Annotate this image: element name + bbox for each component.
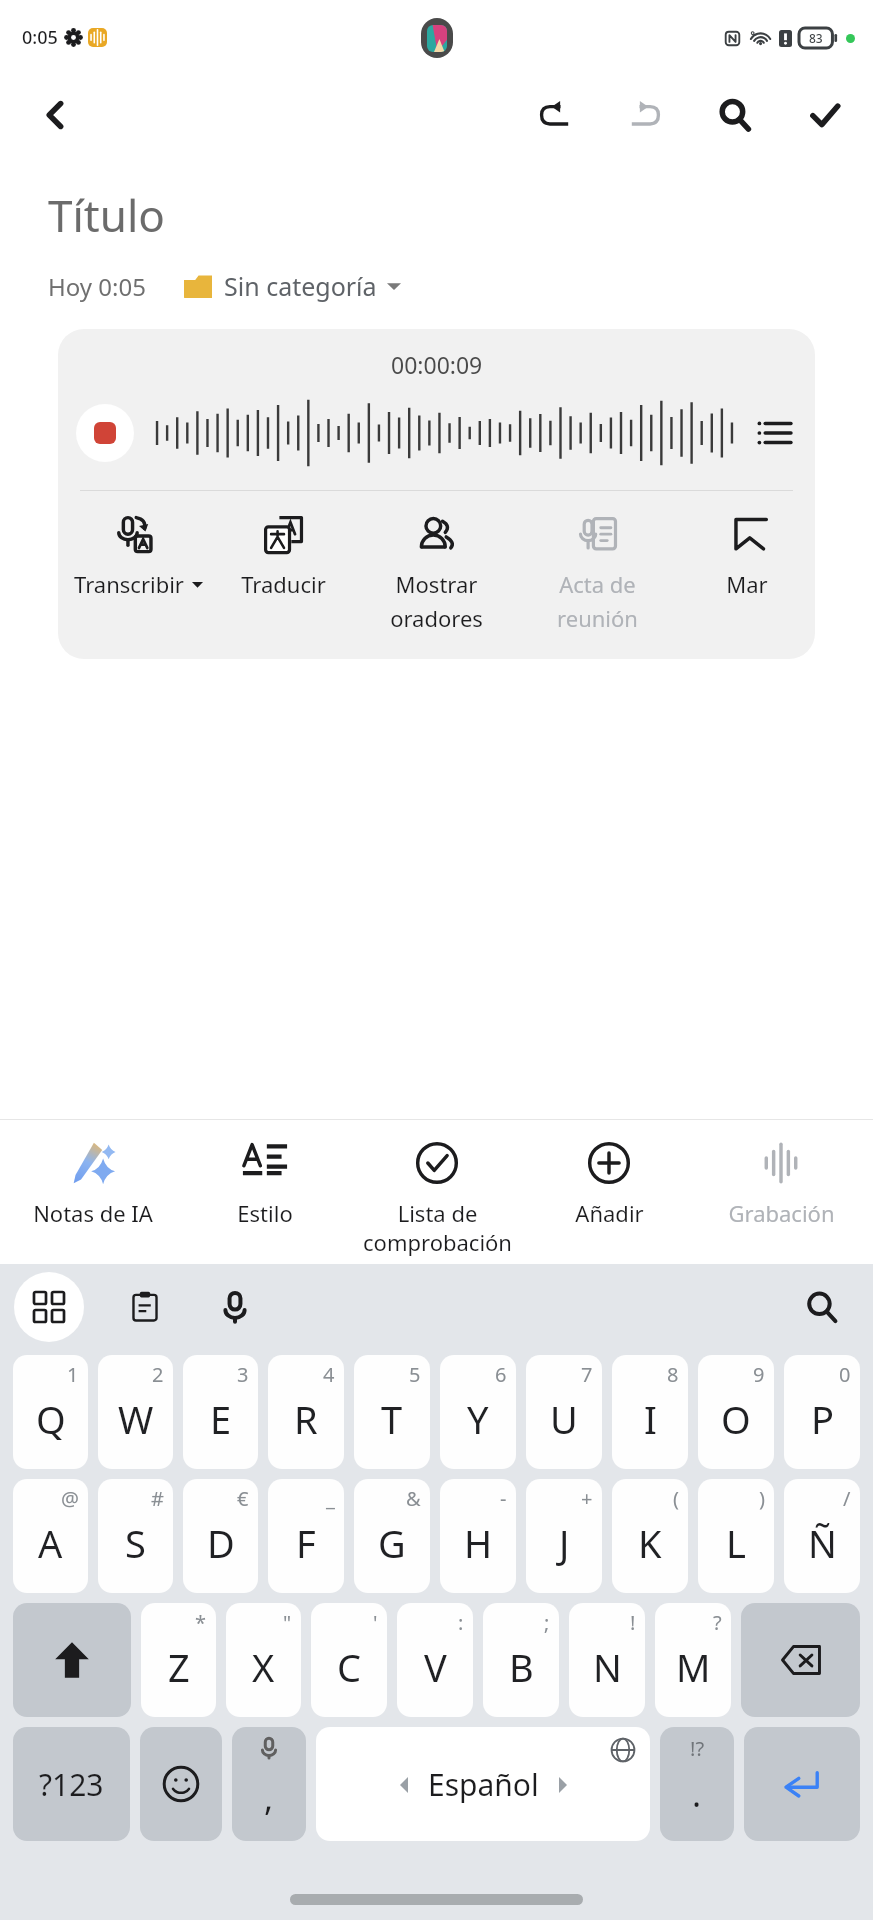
staticText: 00:00:09 — [391, 349, 483, 380]
staticText: R — [294, 1393, 318, 1445]
staticText: Traducir — [241, 569, 326, 599]
staticText: 5 — [409, 1361, 421, 1388]
button[interactable]: Notas de IA — [6, 1120, 179, 1264]
button[interactable]: " — [226, 1603, 301, 1717]
button[interactable]: Transcribir — [66, 509, 211, 603]
button[interactable]: Toolbox — [14, 1272, 84, 1342]
button[interactable]: @ — [13, 1479, 88, 1593]
staticText: J — [559, 1517, 570, 1569]
button[interactable]: Enter — [744, 1727, 860, 1841]
button[interactable]: ) — [698, 1479, 774, 1593]
button[interactable]: Clipboard — [114, 1276, 176, 1338]
staticText: I — [644, 1393, 657, 1445]
button[interactable]: / — [784, 1479, 860, 1593]
button[interactable]: Search — [709, 89, 761, 141]
button[interactable]: Back — [30, 89, 82, 141]
button[interactable]: ( — [612, 1479, 688, 1593]
staticText: Q — [36, 1393, 66, 1445]
button[interactable]: # — [98, 1479, 173, 1593]
staticText: @ — [61, 1485, 79, 1512]
button[interactable]: - — [440, 1479, 516, 1593]
button[interactable]: : — [397, 1603, 473, 1717]
staticText: X — [252, 1641, 275, 1693]
button[interactable]: Grabación — [695, 1120, 867, 1264]
button[interactable]: Redo — [619, 89, 671, 141]
staticText: + — [581, 1485, 593, 1512]
button[interactable]: ! — [569, 1603, 645, 1717]
staticText: : — [458, 1609, 464, 1636]
staticText: Grabación — [728, 1198, 835, 1228]
button[interactable]: 9 — [698, 1355, 774, 1469]
button[interactable]: Search — [791, 1276, 853, 1338]
button[interactable]: Stop recording — [76, 404, 134, 462]
staticText: 4 — [323, 1361, 335, 1388]
staticText: 8 — [667, 1361, 679, 1388]
button[interactable]: 1 — [13, 1355, 88, 1469]
button[interactable]: Emoji — [140, 1727, 222, 1841]
button[interactable]: Backspace — [741, 1603, 860, 1717]
staticText: O — [721, 1393, 751, 1445]
button[interactable]: € — [183, 1479, 258, 1593]
button[interactable]: Español — [316, 1727, 650, 1841]
staticText: W — [118, 1393, 154, 1445]
button[interactable]: Sin categoría — [184, 269, 401, 303]
button[interactable]: Estilo — [179, 1120, 351, 1264]
staticText: 7 — [581, 1361, 593, 1388]
staticText: ' — [373, 1609, 378, 1636]
button[interactable]: Mostrar oradores — [356, 509, 517, 637]
staticText: Ñ — [808, 1517, 837, 1569]
button[interactable]: 2 — [98, 1355, 173, 1469]
button[interactable]: Añadir — [523, 1120, 695, 1264]
staticText: Español — [428, 1764, 539, 1805]
staticText: Estilo — [237, 1198, 293, 1228]
button[interactable]: Traducir — [211, 509, 356, 603]
button[interactable]: Acta de reunión — [517, 509, 678, 637]
button[interactable]: Mar — [678, 509, 815, 603]
staticText: Sin categoría — [224, 269, 377, 303]
button[interactable]: ; — [483, 1603, 559, 1717]
staticText: T — [381, 1393, 403, 1445]
button[interactable]: 5 — [354, 1355, 430, 1469]
button[interactable]: Voice input — [204, 1276, 266, 1338]
button[interactable]: 3 — [183, 1355, 258, 1469]
staticText: A — [38, 1517, 63, 1569]
button[interactable]: ' — [311, 1603, 387, 1717]
button[interactable]: List view — [751, 410, 797, 456]
staticText: Z — [168, 1641, 190, 1693]
button[interactable]: 0 — [784, 1355, 860, 1469]
staticText: & — [406, 1485, 421, 1512]
button[interactable]: Done — [799, 89, 851, 141]
staticText: M — [676, 1641, 711, 1693]
button[interactable]: !? — [660, 1727, 734, 1841]
button[interactable]: & — [354, 1479, 430, 1593]
staticText: F — [296, 1517, 316, 1569]
staticText: 2 — [152, 1361, 164, 1388]
button[interactable]: ?123 — [13, 1727, 130, 1841]
staticText: Hoy 0:05 — [48, 270, 146, 303]
staticText: ( — [673, 1485, 679, 1512]
staticText: Mostrar oradores — [390, 569, 483, 633]
button[interactable]: 7 — [526, 1355, 602, 1469]
staticText: Lista de comprobación — [363, 1198, 512, 1257]
button[interactable]: + — [526, 1479, 602, 1593]
button[interactable]: ? — [655, 1603, 731, 1717]
staticText: 0 — [839, 1361, 851, 1388]
button[interactable]: 6 — [440, 1355, 516, 1469]
staticText: 0:05 — [22, 25, 58, 50]
staticText: 1 — [67, 1361, 79, 1388]
staticText: ; — [544, 1609, 550, 1636]
button[interactable]: Undo — [529, 89, 581, 141]
button[interactable]: 4 — [268, 1355, 344, 1469]
staticText: 3 — [237, 1361, 249, 1388]
button[interactable]: Shift — [13, 1603, 131, 1717]
staticText: # — [151, 1485, 164, 1512]
staticText: € — [237, 1485, 249, 1512]
button[interactable]: , — [232, 1727, 306, 1841]
staticText: Notas de IA — [33, 1198, 153, 1228]
button[interactable]: _ — [268, 1479, 344, 1593]
staticText: Añadir — [575, 1198, 644, 1228]
button[interactable]: 8 — [612, 1355, 688, 1469]
button[interactable]: Lista de comprobación — [351, 1120, 523, 1264]
button[interactable]: * — [141, 1603, 216, 1717]
staticText: / — [843, 1485, 851, 1512]
